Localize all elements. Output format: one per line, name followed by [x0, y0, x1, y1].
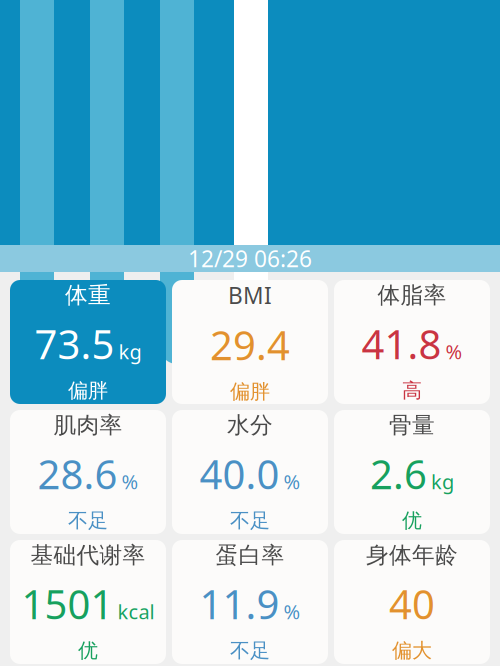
- staticText: kcal: [117, 598, 154, 625]
- staticText: 12/29 06:26: [188, 243, 312, 273]
- staticText: 身体年龄: [366, 541, 458, 569]
- staticText: 体脂率: [377, 281, 446, 309]
- button[interactable]: 体脂率: [334, 280, 490, 404]
- staticText: 水分: [227, 411, 273, 439]
- staticText: 蛋白率: [215, 541, 284, 569]
- staticText: 优: [402, 508, 422, 533]
- staticText: 不足: [230, 638, 270, 663]
- staticText: 28.6: [37, 447, 117, 500]
- staticText: 偏胖: [68, 378, 108, 403]
- staticText: %: [283, 598, 300, 625]
- staticText: 不足: [68, 508, 108, 533]
- button[interactable]: 身体年龄: [334, 540, 490, 664]
- staticText: 骨量: [389, 411, 435, 439]
- staticText: 体重: [65, 281, 111, 309]
- button[interactable]: 基础代谢率: [10, 540, 166, 664]
- button[interactable]: 体重: [10, 280, 166, 404]
- staticText: 2.6: [370, 447, 427, 500]
- staticText: 1501: [21, 577, 113, 630]
- staticText: 不足: [230, 508, 270, 533]
- staticText: 73.5: [34, 317, 114, 370]
- staticText: 基础代谢率: [30, 541, 145, 569]
- staticText: BMI: [228, 280, 272, 310]
- staticText: 高: [402, 378, 422, 403]
- staticText: 偏大: [392, 638, 432, 663]
- button[interactable]: 肌肉率: [10, 410, 166, 534]
- button[interactable]: 骨量: [334, 410, 490, 534]
- staticText: %: [283, 468, 300, 495]
- button[interactable]: BMI: [172, 280, 328, 404]
- staticText: 肌肉率: [53, 411, 122, 439]
- staticText: kg: [118, 338, 141, 365]
- staticText: 40.0: [199, 447, 279, 500]
- staticText: 偏胖: [230, 379, 270, 404]
- staticText: %: [121, 468, 138, 495]
- staticText: 优: [78, 638, 98, 663]
- staticText: 41.8: [361, 317, 441, 370]
- staticText: 29.4: [210, 318, 290, 371]
- button[interactable]: 水分: [172, 410, 328, 534]
- staticText: 11.9: [199, 577, 279, 630]
- staticText: 40: [389, 577, 435, 630]
- button[interactable]: 蛋白率: [172, 540, 328, 664]
- staticText: %: [445, 338, 462, 365]
- staticText: kg: [431, 468, 454, 495]
